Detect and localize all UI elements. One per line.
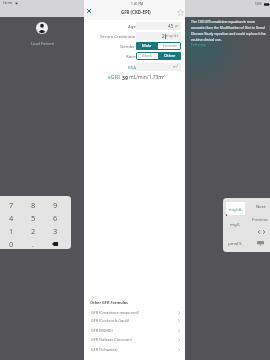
staticText: 100% <box>255 2 262 6</box>
staticText: Load Patient <box>22 41 63 46</box>
staticText: Age <box>128 23 136 29</box>
button[interactable]: 2 <box>136 32 181 40</box>
button[interactable]: m² <box>136 63 181 71</box>
button[interactable]: 0 <box>0 237 22 249</box>
staticText: . <box>32 239 35 249</box>
button[interactable]: Delete <box>44 237 66 249</box>
staticText: Female <box>163 43 177 49</box>
button[interactable]: Favorite <box>175 7 185 17</box>
button[interactable]: 6 <box>44 211 66 224</box>
staticText: Male <box>142 43 152 49</box>
staticText: 2 <box>31 226 36 236</box>
button[interactable]: GFR (Salazar-Corcoran) <box>91 335 180 344</box>
staticText: GFR (CKD-EPI) <box>121 9 151 15</box>
staticText: 39 <box>122 74 128 81</box>
button[interactable]: 45 <box>136 22 181 30</box>
button[interactable]: 1 <box>0 224 22 237</box>
staticText: Serum Creatinine <box>100 33 136 39</box>
button[interactable]: mg/L <box>226 218 245 229</box>
staticText: Other <box>164 53 176 59</box>
button[interactable]: Male <box>136 42 158 50</box>
button[interactable]: Female <box>158 42 181 50</box>
staticText: 3 <box>53 226 58 236</box>
staticText: 8 <box>31 200 36 210</box>
staticText: 4 <box>9 213 14 223</box>
staticText: Previous <box>252 217 269 222</box>
staticText: Gender <box>120 43 136 49</box>
staticText: 0 <box>9 239 14 249</box>
staticText: yr <box>175 23 179 29</box>
button[interactable]: 9 <box>44 198 66 211</box>
button[interactable]: Hide keyboard <box>249 238 270 248</box>
button[interactable]: GFR (Cockcroft-Gault) <box>91 316 180 325</box>
button[interactable]: 3 <box>44 224 66 237</box>
staticText: Full entry <box>191 42 206 47</box>
button[interactable]: µmol/L <box>226 237 245 248</box>
staticText: GFR (Creatinine measured) <box>91 310 139 315</box>
button[interactable]: Previous field <box>256 228 261 236</box>
staticText: GFR (MDRD) <box>91 328 113 333</box>
staticText: Race <box>126 53 136 59</box>
staticText: Other GFR Formulas <box>90 300 129 305</box>
staticText: 2 <box>162 33 165 39</box>
staticText: Next <box>256 203 266 209</box>
staticText: µmol/L <box>228 240 243 246</box>
button[interactable]: 4 <box>0 211 22 224</box>
staticText: mL/min/1.73m² <box>129 74 165 81</box>
staticText: 1 <box>9 226 14 236</box>
staticText: mg/dL <box>166 33 179 39</box>
staticText: GFR (Salazar-Corcoran) <box>91 337 132 342</box>
staticText: Black <box>142 53 153 59</box>
other: Delete <box>52 242 58 246</box>
staticText: 9 <box>53 200 58 210</box>
staticText: mg/L <box>230 221 241 227</box>
button[interactable]: Close <box>84 6 94 16</box>
button[interactable]: Next field <box>261 228 266 236</box>
staticText: m² <box>173 64 179 70</box>
button[interactable]: 5 <box>22 211 44 224</box>
button[interactable]: mg/dL <box>226 202 245 215</box>
staticText: 6 <box>53 213 58 223</box>
staticText: eGFR <box>108 74 121 81</box>
staticText: Carrier <box>3 1 13 5</box>
staticText: 7 <box>9 200 14 210</box>
staticText: BSA <box>128 64 136 70</box>
staticText: 45 <box>168 23 174 29</box>
button[interactable]: Other <box>158 52 181 60</box>
button[interactable]: Next <box>249 201 270 211</box>
staticText: The CKD-EPI creatinine equation is more … <box>191 19 267 42</box>
button[interactable]: 2 <box>22 224 44 237</box>
button[interactable]: 7 <box>0 198 22 211</box>
staticText: 1:40 PM <box>131 2 144 6</box>
button[interactable]: . <box>22 237 44 249</box>
button[interactable]: Previous <box>249 214 270 224</box>
button[interactable]: 8 <box>22 198 44 211</box>
staticText: 5 <box>31 213 36 223</box>
staticText: GFR (Cockcroft-Gault) <box>91 318 130 323</box>
button[interactable]: GFR (Schwartz) <box>91 345 180 354</box>
button[interactable]: GFR (Creatinine measured) <box>91 308 180 317</box>
staticText: mg/dL <box>229 206 243 212</box>
button[interactable]: Black <box>136 52 158 60</box>
staticText: GFR (Schwartz) <box>91 347 118 352</box>
button[interactable]: GFR (MDRD) <box>91 326 180 335</box>
